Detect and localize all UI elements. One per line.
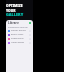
button[interactable]: Blurry shots	[8, 33, 31, 36]
staticText: Similar photos	[11, 29, 26, 32]
staticText: OPTIMIZE	[6, 3, 23, 7]
staticText: Blurry shots	[11, 33, 24, 36]
button[interactable]: Similar photos	[8, 29, 31, 32]
staticText: GALLERY	[6, 12, 24, 17]
staticText: Library	[8, 21, 19, 24]
button[interactable]: Large videos	[8, 41, 31, 44]
staticText: Large videos	[11, 41, 25, 44]
staticText: Suggested cleanup	[8, 26, 28, 29]
staticText: YOUR	[6, 8, 16, 12]
button[interactable]: Screenshots	[8, 37, 31, 40]
staticText: Screenshots	[11, 37, 24, 40]
